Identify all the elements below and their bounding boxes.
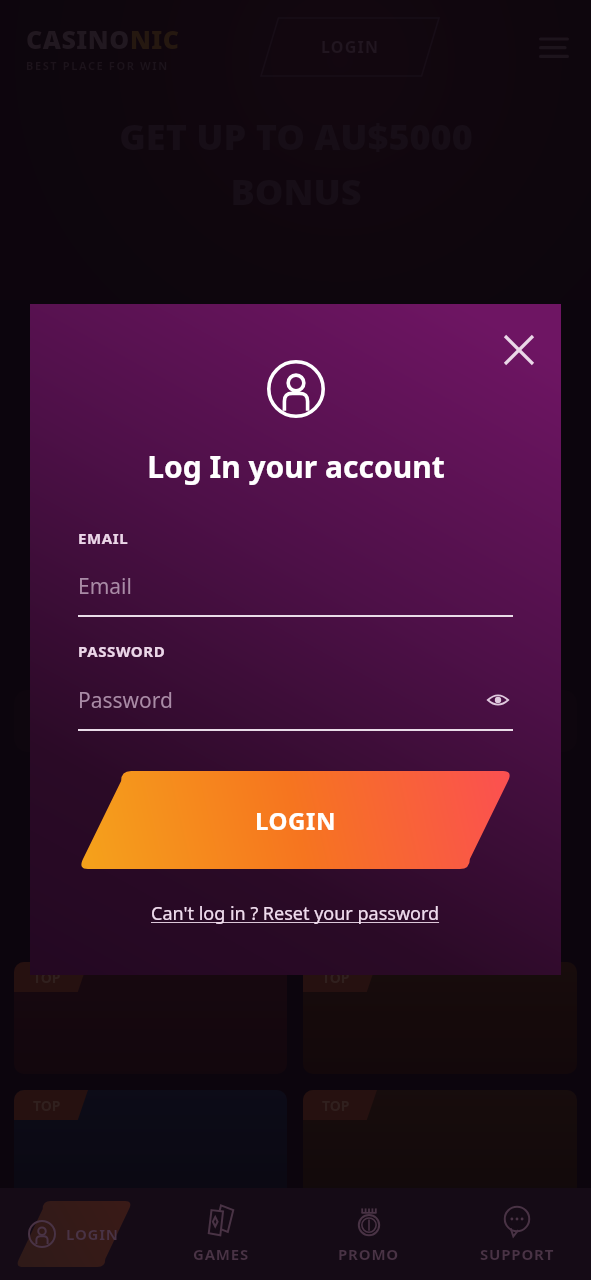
button[interactable]: SUPPORT: [443, 1188, 591, 1280]
staticText: BONUS: [230, 167, 362, 216]
staticText: CASINO: [26, 22, 130, 56]
button[interactable]: Can't log in ? Reset your password: [145, 895, 446, 932]
button[interactable]: TOP: [14, 1090, 287, 1202]
button[interactable]: TOP: [303, 1090, 577, 1202]
staticText: BEST PLACE FOR WIN: [26, 58, 169, 73]
staticText: PASSWORD: [78, 641, 166, 661]
button[interactable]: PROMO: [295, 1188, 443, 1280]
staticText: SUPPORT: [480, 1244, 555, 1264]
staticText: GET UP TO AU$5000: [119, 112, 473, 161]
button[interactable]: GAMES: [147, 1188, 295, 1280]
button[interactable]: Email: [78, 572, 513, 617]
button[interactable]: TOP: [14, 962, 287, 1074]
staticText: TOP: [33, 968, 61, 987]
button[interactable]: TOP: [303, 962, 577, 1074]
staticText: NIC: [130, 22, 180, 56]
button[interactable]: Password: [78, 685, 513, 731]
staticText: LOGIN: [66, 1224, 119, 1244]
staticText: GAMES: [193, 1244, 250, 1264]
staticText: TOP: [322, 1096, 350, 1115]
staticText: PROMO: [338, 1244, 400, 1264]
staticText: Password: [78, 686, 483, 715]
staticText: Email: [78, 572, 513, 601]
staticText: Can't log in ? Reset your password: [151, 901, 440, 926]
staticText: TOP: [33, 1096, 61, 1115]
button[interactable]: LOGIN: [0, 1188, 147, 1280]
staticText: EMAIL: [78, 528, 129, 548]
staticText: LOGIN: [321, 36, 380, 58]
staticText: Log In your account: [147, 446, 445, 487]
button[interactable]: LOGIN: [78, 771, 513, 869]
button[interactable]: Close: [491, 322, 547, 378]
staticText: LOGIN: [255, 804, 337, 837]
button[interactable]: Menu: [527, 20, 581, 74]
button[interactable]: Show password: [483, 685, 513, 715]
staticText: TOP: [322, 968, 350, 987]
